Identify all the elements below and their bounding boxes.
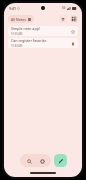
button[interactable]: Simple note app! bbox=[8, 26, 78, 36]
button[interactable]: Can register favorite. bbox=[8, 38, 78, 48]
button[interactable]: New note bbox=[54, 154, 67, 167]
button[interactable]: Search bbox=[24, 156, 34, 166]
staticText: Simple note app! bbox=[11, 26, 40, 31]
staticText: 9:41 bbox=[9, 6, 16, 11]
staticText: Can register favorite. bbox=[11, 38, 48, 43]
staticText: 10:36 AM bbox=[11, 32, 23, 36]
button[interactable]: Settings bbox=[37, 156, 47, 166]
button[interactable]: Delete bbox=[59, 15, 67, 23]
button[interactable]: All Notes bbox=[8, 15, 34, 23]
button[interactable]: Layout bbox=[70, 15, 78, 23]
staticText: 10:40 AM bbox=[11, 44, 23, 48]
staticText: 84 bbox=[62, 6, 66, 10]
staticText: All Notes bbox=[11, 17, 26, 22]
